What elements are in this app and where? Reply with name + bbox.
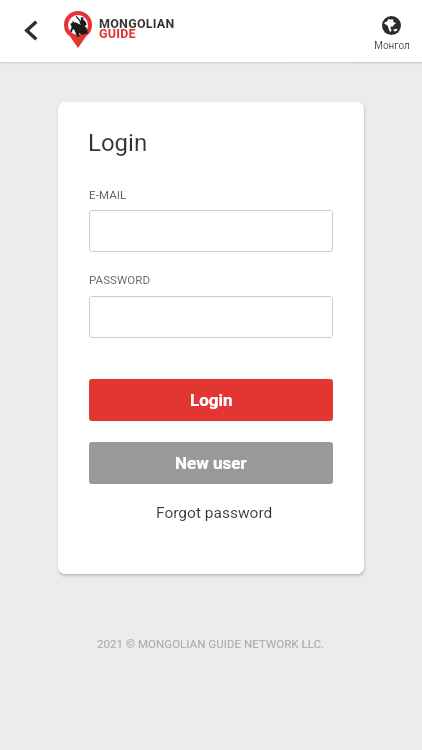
staticText: Login [190, 390, 233, 410]
staticText: 2021 © MONGOLIAN GUIDE NETWORK LLC. [97, 637, 325, 650]
staticText: E-MAIL [89, 188, 127, 201]
button[interactable]: Forgot password [146, 500, 283, 526]
button[interactable]: Login [89, 379, 333, 421]
button[interactable] [89, 210, 333, 252]
button[interactable]: Back [11, 10, 51, 50]
staticText: MONGOLIAN [99, 16, 175, 31]
staticText: GUIDE [99, 26, 136, 41]
staticText: Forgot password [156, 504, 273, 522]
button[interactable]: Language [368, 16, 415, 52]
button[interactable] [89, 296, 333, 338]
staticText: New user [175, 453, 247, 473]
staticText: Login [88, 129, 148, 157]
staticText: PASSWORD [89, 273, 151, 286]
staticText: Монгол [374, 40, 410, 52]
button[interactable]: New user [89, 442, 333, 484]
